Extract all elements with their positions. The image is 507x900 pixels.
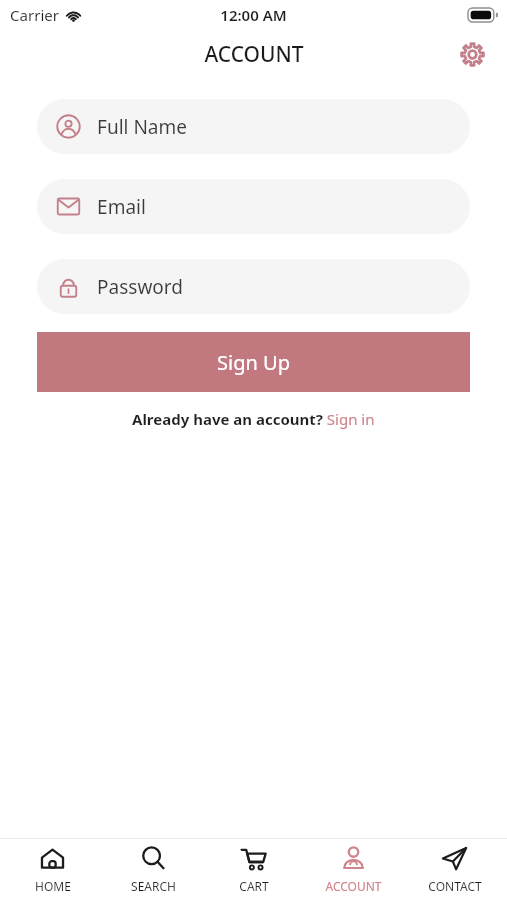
button[interactable]: Email <box>37 179 470 234</box>
staticText: HOME <box>35 878 71 894</box>
staticText: SEARCH <box>131 878 176 894</box>
staticText: CART <box>239 878 269 894</box>
button[interactable]: Already have an account? Sign in <box>126 406 381 432</box>
staticText: Email <box>97 194 146 220</box>
button[interactable]: Settings <box>454 36 490 72</box>
button[interactable]: Full Name <box>37 99 470 154</box>
staticText: ACCOUNT <box>325 878 382 894</box>
staticText: Full Name <box>97 114 187 140</box>
staticText: Already have an account? Sign in <box>132 409 375 429</box>
staticText: Sign Up <box>217 349 290 376</box>
staticText: CONTACT <box>428 878 482 894</box>
button[interactable]: HOME <box>5 839 100 900</box>
button[interactable]: Password <box>37 259 470 314</box>
button[interactable]: CART <box>206 839 301 900</box>
staticText: 12:00 AM <box>220 5 287 25</box>
button[interactable]: ACCOUNT <box>306 839 401 900</box>
button[interactable]: Sign Up <box>37 332 470 392</box>
staticText: ACCOUNT <box>204 40 304 69</box>
staticText: Password <box>97 274 183 300</box>
button[interactable]: CONTACT <box>407 839 502 900</box>
button[interactable]: SEARCH <box>106 839 201 900</box>
staticText: Carrier <box>10 5 59 25</box>
